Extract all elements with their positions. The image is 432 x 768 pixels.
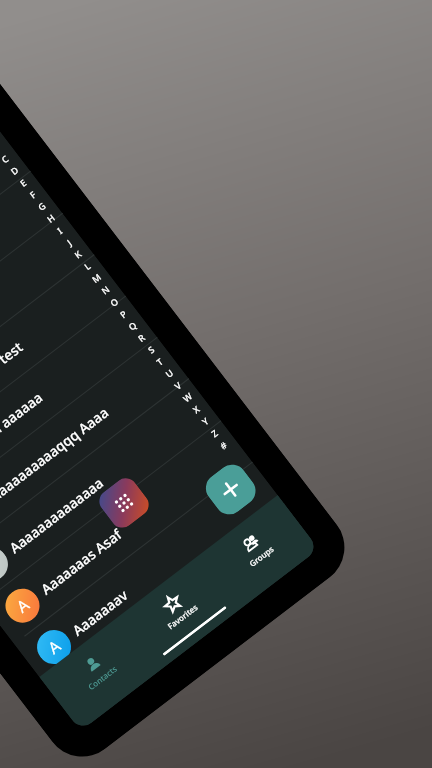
button[interactable]: Contacts: [39, 616, 160, 731]
staticText: Groups: [247, 543, 276, 569]
button[interactable]: A: [0, 130, 31, 354]
staticText: D: [8, 163, 20, 177]
staticText: G: [35, 199, 48, 213]
staticText: W: [180, 389, 194, 404]
button[interactable]: A: [0, 380, 221, 603]
staticText: V: [172, 379, 184, 392]
staticText: I: [54, 224, 64, 236]
staticText: O: [107, 295, 121, 309]
staticText: X: [190, 403, 202, 416]
button[interactable]: A: [0, 421, 253, 645]
button[interactable]: A: [0, 296, 158, 520]
button[interactable]: Alphabet index: [0, 122, 236, 457]
button[interactable]: A: [0, 338, 189, 561]
staticText: J: [64, 236, 74, 248]
staticText: F: [27, 188, 38, 201]
staticText: N: [99, 283, 112, 296]
button[interactable]: A: [0, 255, 126, 478]
staticText: K: [71, 248, 84, 261]
staticText: S: [145, 343, 156, 356]
staticText: Aaaaaaaaaaaaqqq Aaaa: [0, 402, 113, 515]
staticText: U: [162, 366, 175, 380]
button[interactable]: Favorites: [119, 556, 239, 670]
staticText: Y: [199, 414, 211, 428]
staticText: Aaaaaaaaaaaaaa: [5, 473, 107, 557]
staticText: M: [89, 270, 103, 285]
staticText: Z: [208, 426, 220, 440]
button[interactable]: Groups: [198, 495, 319, 610]
staticText: E: [17, 176, 29, 189]
staticText: C: [0, 152, 11, 165]
staticText: Aaaaaaaa aaaaaa: [0, 387, 46, 474]
staticText: Aaaaaaav: [68, 585, 132, 640]
button[interactable]: Create new contact: [200, 459, 262, 520]
staticText: #: [217, 438, 229, 451]
button[interactable]: A: [14, 462, 284, 686]
staticText: Favorites: [165, 601, 199, 631]
staticText: A: [43, 635, 65, 659]
staticText: P: [117, 307, 129, 320]
staticText: Aaaa whatsapp test: [0, 337, 26, 432]
staticText: Contacts: [86, 663, 119, 692]
staticText: Q: [125, 318, 139, 333]
staticText: R: [135, 331, 147, 344]
button[interactable]: A: [0, 172, 63, 396]
button[interactable]: Floating app bubble: [95, 474, 153, 532]
staticText: Aaaaaaas Asaf: [37, 524, 125, 598]
staticText: A: [12, 593, 34, 617]
staticText: H: [44, 211, 57, 225]
staticText: T: [153, 355, 165, 368]
staticText: L: [81, 259, 93, 272]
button[interactable]: A: [0, 214, 94, 437]
